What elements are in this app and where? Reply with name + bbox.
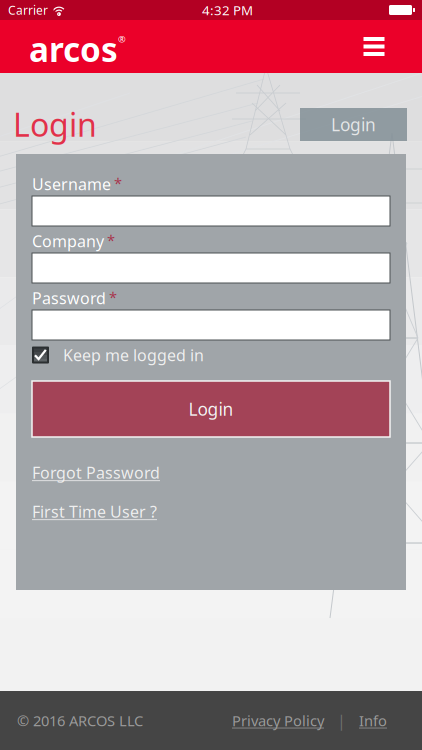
button[interactable]: Forgot Password [32,463,160,482]
staticText: ® [118,33,126,45]
staticText: Login [13,103,97,145]
staticText: Carrier [8,2,48,18]
staticText: Username [32,173,111,195]
staticText: Company [32,230,104,252]
button[interactable]: Menu [350,20,398,73]
staticText: Keep me logged in [63,344,204,366]
staticText: Privacy Policy [232,711,324,730]
staticText: arcos [29,27,118,71]
staticText: Info [359,711,387,730]
staticText: Login [188,397,233,420]
staticText: 4:32 PM [202,1,253,19]
button[interactable]: First Time User ? [32,502,157,521]
staticText: * [109,287,117,307]
staticText: © 2016 ARCOS LLC [17,711,143,730]
staticText: * [114,173,122,193]
button[interactable]: Info [359,704,387,737]
staticText: * [107,230,115,250]
staticText: Forgot Password [32,462,160,483]
button[interactable]: Login [32,381,390,437]
staticText: Login [331,113,376,136]
staticText: | [337,710,346,731]
staticText: Password [32,287,106,309]
button[interactable]: Keep me logged in [32,346,390,364]
staticText: First Time User ? [32,501,157,522]
button[interactable]: Privacy Policy [232,704,324,737]
button[interactable]: Login [300,108,407,141]
